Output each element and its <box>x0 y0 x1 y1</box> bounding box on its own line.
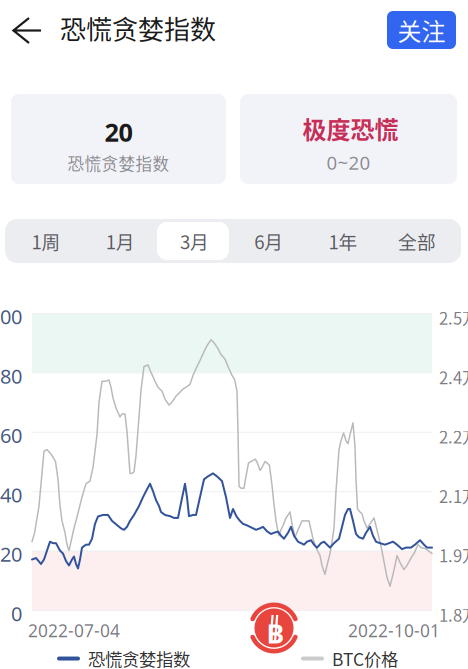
staticText: 1周 <box>32 227 61 254</box>
staticText: B <box>266 615 284 651</box>
button[interactable]: 1月 <box>83 219 157 263</box>
staticText: 6月 <box>254 227 283 254</box>
staticText: 0~20 <box>326 150 370 175</box>
staticText: 40 <box>0 481 22 508</box>
staticText: 1.8万 <box>439 602 468 626</box>
button[interactable]: 全部 <box>380 219 454 263</box>
button[interactable]: 关注 <box>387 11 456 49</box>
staticText: 2.1万 <box>439 484 468 508</box>
staticText: 恐慌贪婪指数 <box>60 9 216 47</box>
staticText: 2.2万 <box>439 424 468 448</box>
staticText: 全部 <box>398 227 436 254</box>
staticText: 极度恐慌 <box>302 111 398 146</box>
staticText: 20 <box>0 541 22 567</box>
staticText: 60 <box>0 422 22 449</box>
staticText: 1年 <box>328 227 357 254</box>
button[interactable]: 1年 <box>306 219 380 263</box>
staticText: 80 <box>0 363 22 389</box>
staticText: 关注 <box>397 13 445 47</box>
staticText: 2022-10-01 <box>348 619 440 642</box>
staticText: 20 <box>104 115 132 149</box>
staticText: BTC价格 <box>332 646 398 669</box>
staticText: 2.4万 <box>439 365 468 389</box>
staticText: 2022-07-04 <box>28 619 120 642</box>
staticText: 1.9万 <box>439 543 468 567</box>
staticText: 0 <box>11 600 22 627</box>
staticText: 3月 <box>180 227 209 254</box>
button[interactable]: Back <box>6 10 48 52</box>
staticText: 100 <box>0 303 22 330</box>
staticText: 2.5万 <box>439 305 468 329</box>
staticText: 恐慌贪婪指数 <box>67 151 169 175</box>
staticText: 恐慌贪婪指数 <box>88 646 190 669</box>
button[interactable]: 1周 <box>9 219 83 263</box>
button[interactable]: 6月 <box>232 219 306 263</box>
staticText: 1月 <box>106 227 135 254</box>
button[interactable]: 3月 <box>157 219 232 263</box>
